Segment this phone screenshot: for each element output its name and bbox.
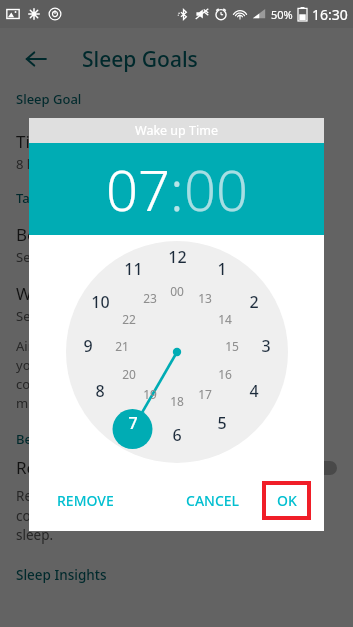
staticText: Bedtime: [16, 223, 84, 246]
button[interactable]: REMOVE: [57, 491, 114, 510]
staticText: Wake up Time: [135, 122, 218, 139]
staticText: 16: [218, 366, 232, 382]
staticText: Bedtime reminder: [16, 430, 130, 448]
staticText: Sleep Insights: [16, 566, 107, 584]
staticText: :: [170, 151, 184, 227]
button[interactable]: Wake up time: [16, 282, 337, 325]
staticText: 8: [95, 380, 105, 402]
staticText: Wake up time: [16, 282, 126, 305]
button[interactable]: CANCEL: [186, 491, 240, 510]
staticText: 07: [106, 151, 170, 227]
staticText: 17: [198, 386, 212, 402]
staticText: 5: [217, 412, 227, 434]
staticText: 50%: [271, 7, 293, 22]
staticText: Sleep Goals: [82, 45, 198, 74]
staticText: 12: [168, 246, 187, 268]
staticText: 1: [217, 258, 227, 280]
button[interactable]: Back: [16, 39, 56, 79]
staticText: Receive a reminder on your mobile device…: [16, 487, 337, 544]
button[interactable]: Bedtime: [16, 223, 337, 266]
staticText: 15: [225, 338, 239, 354]
staticText: 21: [115, 338, 129, 354]
staticText: Aim for a consistent sleep schedule to h…: [16, 337, 278, 412]
button[interactable]: OK: [266, 485, 307, 516]
staticText: 16:30: [312, 5, 348, 24]
staticText: 23: [143, 290, 157, 306]
staticText: 00: [170, 283, 184, 299]
staticText: 8 hrs: [16, 155, 47, 173]
staticText: 3: [261, 335, 271, 357]
button[interactable]: Time asleep: [16, 130, 337, 173]
staticText: 4: [249, 380, 259, 402]
staticText: 6: [172, 424, 182, 446]
button[interactable]: [303, 461, 337, 475]
staticText: 9: [83, 335, 93, 357]
staticText: 22: [122, 311, 136, 327]
staticText: CANCEL: [186, 491, 240, 510]
staticText: 11: [124, 258, 143, 280]
staticText: Reminder: [16, 456, 95, 479]
button[interactable]: 07: [106, 151, 170, 227]
staticText: Set a bedtime: [16, 248, 101, 266]
button[interactable]: 00: [184, 151, 248, 227]
staticText: 18: [170, 393, 184, 409]
staticText: 2: [249, 291, 259, 313]
staticText: 20: [122, 366, 136, 382]
staticText: 7: [128, 412, 138, 434]
staticText: REMOVE: [57, 491, 114, 510]
button[interactable]: Clock face, 7 o'clock: [29, 235, 324, 469]
staticText: 13: [198, 290, 212, 306]
staticText: 19: [143, 386, 157, 402]
staticText: Sleep Goal: [16, 90, 82, 108]
staticText: Targets: [16, 189, 62, 207]
staticText: 00: [184, 151, 248, 227]
staticText: 14: [218, 311, 232, 327]
staticText: Set a wake up time: [16, 307, 132, 325]
staticText: 10: [91, 291, 110, 313]
staticText: OK: [277, 491, 297, 510]
staticText: Time asleep: [16, 130, 112, 153]
